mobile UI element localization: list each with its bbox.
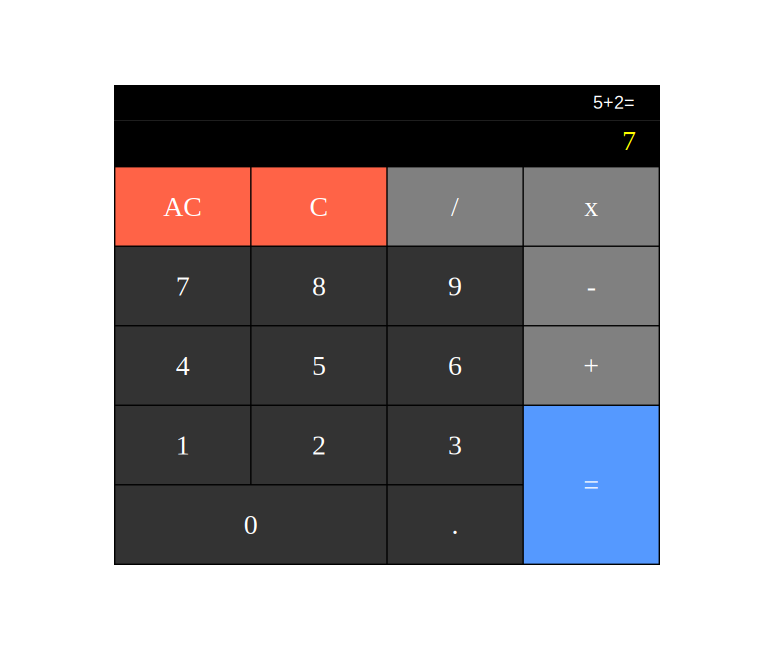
button[interactable]: AC: [115, 167, 250, 245]
button[interactable]: 9: [388, 247, 522, 325]
staticText: C: [309, 191, 328, 222]
staticText: AC: [163, 191, 202, 222]
button[interactable]: C: [252, 167, 386, 245]
staticText: 2: [312, 429, 326, 460]
staticText: 3: [448, 429, 462, 460]
button[interactable]: =: [524, 406, 659, 564]
button[interactable]: 4: [115, 326, 250, 404]
staticText: 0: [244, 509, 258, 540]
button[interactable]: 7: [115, 247, 250, 325]
staticText: 7: [622, 125, 636, 156]
staticText: x: [584, 191, 598, 222]
button[interactable]: .: [388, 485, 522, 564]
staticText: 4: [176, 350, 190, 381]
staticText: .: [452, 509, 459, 540]
button[interactable]: 2: [252, 406, 386, 484]
button[interactable]: 1: [115, 406, 250, 484]
button[interactable]: /: [388, 167, 522, 245]
button[interactable]: 0: [115, 485, 386, 564]
staticText: -: [587, 270, 596, 301]
staticText: 1: [176, 429, 190, 460]
staticText: 5: [312, 350, 326, 381]
button[interactable]: 5: [252, 326, 386, 404]
staticText: =: [583, 469, 599, 500]
button[interactable]: 6: [388, 326, 522, 404]
button[interactable]: 3: [388, 406, 522, 484]
staticText: 9: [448, 270, 462, 301]
button[interactable]: x: [524, 167, 659, 245]
staticText: /: [451, 191, 459, 222]
staticText: 8: [312, 270, 326, 301]
staticText: 6: [448, 350, 462, 381]
staticText: 5+2=: [593, 92, 635, 112]
button[interactable]: 8: [252, 247, 386, 325]
button[interactable]: -: [524, 247, 659, 325]
staticText: 7: [176, 270, 190, 301]
staticText: +: [583, 350, 599, 381]
button[interactable]: +: [524, 326, 659, 404]
